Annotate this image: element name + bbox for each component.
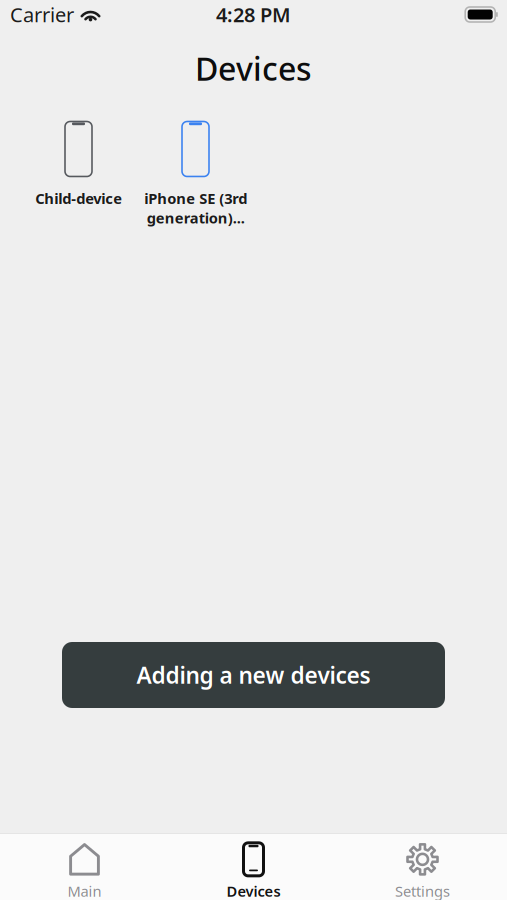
staticText: Devices [226,881,280,900]
button[interactable]: Main [0,833,169,900]
button[interactable]: Devices [169,833,338,900]
button[interactable]: Child-device [20,121,137,239]
staticText: Carrier [10,1,74,28]
staticText: Settings [395,881,450,900]
staticText: iPhone SE (3rd generation)... [144,188,247,227]
staticText: Adding a new devices [136,660,370,690]
staticText: 4:28 PM [216,1,291,28]
button[interactable]: Adding a new devices [62,642,445,708]
staticText: Devices [195,47,312,89]
button[interactable]: iPhone SE (3rd generation)... [137,121,254,239]
button[interactable]: Settings [338,833,507,900]
staticText: Child-device [35,188,122,208]
staticText: Main [67,881,101,900]
